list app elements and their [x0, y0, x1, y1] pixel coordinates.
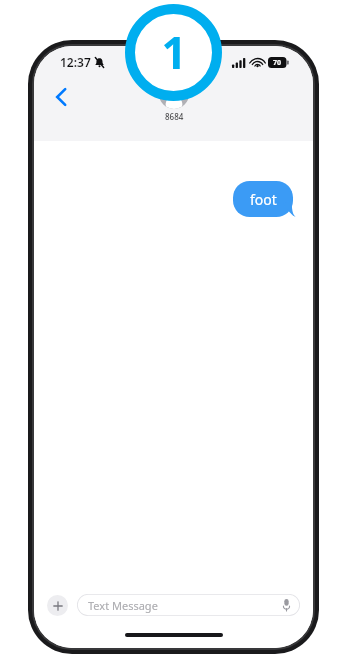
staticText: 70 [273, 58, 282, 68]
staticText: 1 [161, 22, 187, 82]
button[interactable]: Record audio message [279, 598, 293, 612]
button[interactable]: Add attachment [47, 595, 68, 616]
staticText: 12:37 [60, 54, 91, 70]
staticText: 8684 [165, 111, 184, 122]
button[interactable]: Back [44, 80, 78, 114]
staticText: foot [250, 190, 277, 209]
button[interactable]: 8684 [159, 79, 189, 122]
button[interactable]: Text Message [77, 594, 300, 616]
button[interactable]: foot [233, 181, 297, 217]
staticText: Text Message [88, 598, 158, 613]
